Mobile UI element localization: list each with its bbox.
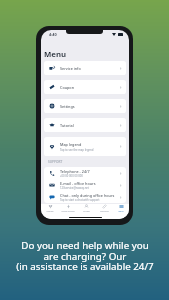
staticText: Tap to start a chat with support <box>60 198 100 202</box>
staticText: SUPPORT <box>48 160 63 164</box>
staticText: Do you need help while you are charging?… <box>16 239 154 273</box>
button[interactable]: Menu <box>113 204 129 213</box>
button[interactable]: Profile <box>77 204 95 213</box>
button[interactable]: Charge <box>41 204 59 213</box>
staticText: Chat - only during office hours <box>60 193 115 198</box>
button[interactable]: Discount <box>95 204 113 213</box>
staticText: Telephone - 24/7 <box>60 169 90 174</box>
button[interactable]: Chat - only during office hours <box>44 191 126 203</box>
staticText: Tap to see the map legend <box>60 148 94 152</box>
staticText: Profile <box>83 210 90 213</box>
staticText: Coupon <box>60 85 74 90</box>
staticText: Menu <box>44 49 67 60</box>
button[interactable]: Telephone - 24/7 <box>44 167 126 179</box>
staticText: 4:40 <box>49 32 57 37</box>
button[interactable]: Map legend <box>44 137 126 156</box>
staticText: Charge <box>46 210 54 213</box>
button[interactable]: Coupon <box>44 80 126 94</box>
staticText: Menu <box>118 210 124 213</box>
staticText: Tutorial <box>60 123 74 128</box>
staticText: 123service@noway.net <box>60 186 89 190</box>
staticText: Service info <box>60 66 81 71</box>
staticText: Settings <box>60 104 75 109</box>
button[interactable]: Service info <box>44 61 126 75</box>
staticText: +00 00 000 00 000 <box>60 174 83 178</box>
button[interactable]: E-mail - office hours <box>44 179 126 191</box>
staticText: Discount <box>100 210 109 213</box>
button[interactable]: Active session <box>59 204 77 213</box>
staticText: Active session <box>61 210 75 213</box>
button[interactable]: Tutorial <box>44 118 126 132</box>
staticText: Map legend <box>60 142 82 147</box>
staticText: E-mail - office hours <box>60 181 96 186</box>
button[interactable]: Settings <box>44 99 126 113</box>
